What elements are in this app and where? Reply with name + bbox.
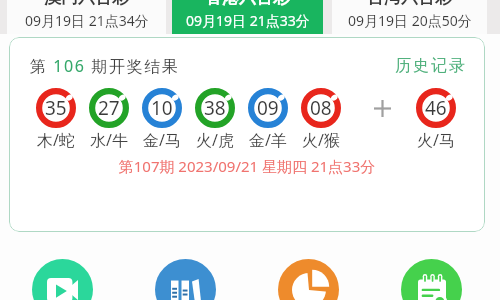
staticText: 澳门六合彩 bbox=[44, 0, 129, 8]
staticText: 金/马 bbox=[143, 129, 181, 151]
button[interactable]: 澳门六合彩 bbox=[7, 0, 166, 34]
staticText: 第 106 期开奖结果 bbox=[30, 55, 180, 77]
staticText: 火/猴 bbox=[302, 129, 340, 151]
button[interactable]: Live video bbox=[32, 259, 93, 300]
button[interactable]: Notes bbox=[401, 259, 462, 300]
staticText: 火/马 bbox=[417, 129, 455, 151]
staticText: 09月19日 20点50分 bbox=[348, 11, 472, 30]
staticText: 35 bbox=[45, 95, 67, 121]
staticText: 香港六合彩 bbox=[205, 0, 290, 8]
staticText: 第107期 2023/09/21 星期四 21点33分 bbox=[9, 156, 485, 176]
staticText: 金/羊 bbox=[249, 129, 287, 151]
staticText: 木/蛇 bbox=[37, 129, 75, 151]
staticText: 09月19日 21点34分 bbox=[25, 11, 149, 30]
button[interactable]: Statistics bbox=[278, 259, 339, 300]
staticText: 火/虎 bbox=[196, 129, 234, 151]
staticText: 水/牛 bbox=[90, 129, 128, 151]
staticText: 09 bbox=[257, 95, 279, 121]
button[interactable]: Library bbox=[155, 259, 216, 300]
staticText: 10 bbox=[151, 95, 173, 121]
staticText: 38 bbox=[204, 95, 226, 121]
staticText: 08 bbox=[310, 95, 332, 121]
staticText: 台湾六合彩 bbox=[367, 0, 452, 8]
staticText: 09月19日 21点33分 bbox=[186, 11, 310, 30]
staticText: 46 bbox=[425, 95, 447, 121]
staticText: 历史记录 bbox=[394, 56, 466, 76]
button[interactable]: 历史记录 bbox=[394, 56, 466, 76]
button[interactable]: 台湾六合彩 bbox=[332, 0, 487, 34]
button[interactable]: 香港六合彩 bbox=[172, 0, 323, 34]
staticText: 27 bbox=[98, 95, 120, 121]
